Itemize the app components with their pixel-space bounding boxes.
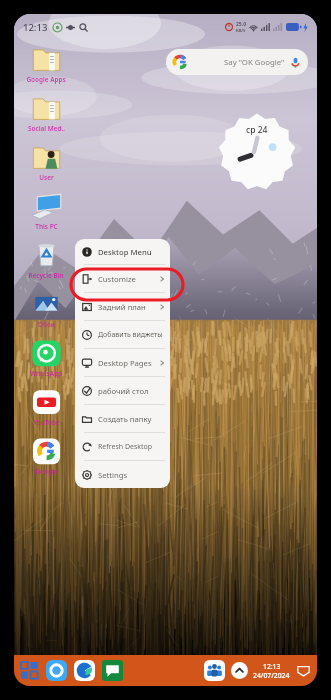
button[interactable]: Обои bbox=[17, 287, 75, 329]
staticText: 12:13 bbox=[23, 21, 48, 34]
staticText: Создать папку bbox=[98, 414, 152, 424]
staticText: 12:13 bbox=[263, 662, 281, 671]
button[interactable]: This PC bbox=[17, 189, 75, 231]
button[interactable]: Задний план bbox=[75, 293, 170, 320]
staticText: Desktop Pages bbox=[98, 358, 152, 368]
button[interactable]: User bbox=[17, 140, 75, 182]
button[interactable]: Social Med.. bbox=[17, 91, 75, 133]
staticText: 25.0 bbox=[236, 21, 246, 28]
button[interactable]: Recycle Bin bbox=[17, 238, 75, 280]
button[interactable]: Settings bbox=[75, 461, 170, 488]
staticText: WhatsApp bbox=[30, 369, 62, 378]
button[interactable]: Show hidden icons bbox=[231, 662, 248, 679]
staticText: cp 24 bbox=[246, 124, 268, 136]
button[interactable]: Microsoft Edge bbox=[72, 658, 97, 683]
button[interactable]: People bbox=[203, 659, 226, 682]
staticText: Добавить виджеты bbox=[98, 330, 163, 340]
button[interactable]: Browser bbox=[44, 658, 69, 683]
button[interactable]: Desktop Menu bbox=[75, 239, 170, 264]
button[interactable]: Google Apps bbox=[17, 42, 75, 84]
staticText: Desktop Menu bbox=[98, 247, 152, 257]
staticText: Refresh Desktop bbox=[98, 442, 153, 452]
staticText: Recycle Bin bbox=[28, 271, 64, 280]
staticText: Say "OK Google" bbox=[224, 57, 285, 68]
staticText: Social Med.. bbox=[28, 124, 65, 133]
staticText: Google bbox=[35, 467, 58, 476]
button[interactable]: Refresh Desktop bbox=[75, 433, 170, 460]
staticText: Обои bbox=[38, 320, 55, 329]
button[interactable]: Messages bbox=[100, 658, 125, 683]
staticText: YouTube bbox=[33, 418, 60, 427]
button[interactable]: YouTube bbox=[17, 385, 75, 427]
button[interactable]: Start bbox=[18, 659, 41, 682]
button[interactable]: Say "OK Google" bbox=[166, 49, 308, 75]
staticText: Google Apps bbox=[26, 75, 66, 84]
staticText: 24/07/2024 bbox=[253, 671, 290, 680]
button[interactable]: 12:13 bbox=[253, 662, 290, 680]
button[interactable]: Google bbox=[17, 434, 75, 476]
staticText: KB/S bbox=[236, 28, 246, 33]
staticText: User bbox=[39, 173, 54, 182]
button[interactable]: рабочий стол bbox=[75, 377, 170, 404]
button[interactable]: Desktop Pages bbox=[75, 349, 170, 376]
staticText: Settings bbox=[98, 470, 128, 480]
staticText: рабочий стол bbox=[98, 386, 149, 396]
staticText: Customize bbox=[98, 274, 136, 284]
button[interactable]: Добавить виджеты bbox=[75, 321, 170, 348]
button[interactable]: WhatsApp bbox=[17, 336, 75, 378]
button[interactable]: Customize bbox=[75, 265, 170, 292]
staticText: Задний план bbox=[98, 302, 146, 312]
staticText: This PC bbox=[35, 222, 58, 231]
button[interactable]: Notifications bbox=[296, 663, 311, 678]
button[interactable]: Создать папку bbox=[75, 405, 170, 432]
